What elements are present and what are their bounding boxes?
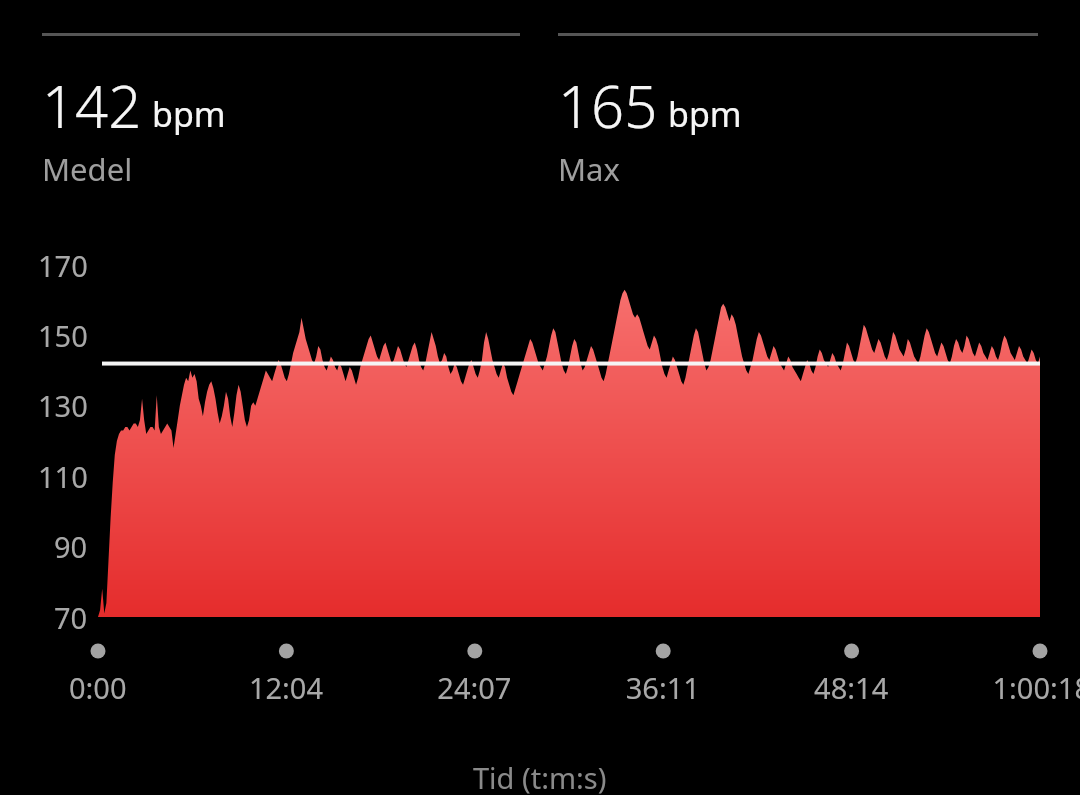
button[interactable]: Heart rate chart xyxy=(0,0,1080,795)
